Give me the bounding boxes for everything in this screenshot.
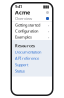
button[interactable]: Support xyxy=(15,62,28,67)
staticText: › xyxy=(48,28,49,34)
button[interactable]: Examples xyxy=(12,34,52,40)
staticText: Getting started xyxy=(15,22,40,28)
staticText: 9:41 xyxy=(15,4,22,9)
staticText: Overview xyxy=(15,16,32,21)
staticText: ▮▮▮ xyxy=(43,4,49,9)
staticText: Support xyxy=(15,62,28,67)
staticText: Status xyxy=(15,68,25,73)
staticText: Configuration xyxy=(15,28,38,34)
staticText: Acme xyxy=(15,9,30,16)
staticText: › xyxy=(48,34,49,40)
button[interactable]: Documentation xyxy=(15,49,41,55)
button[interactable]: Configuration xyxy=(12,28,52,34)
button[interactable]: Add xyxy=(46,17,49,20)
staticText: Documentation xyxy=(15,49,41,55)
staticText: API reference xyxy=(15,56,39,61)
staticText: › xyxy=(48,22,49,28)
button[interactable]: Getting started xyxy=(12,22,52,28)
button[interactable]: Account xyxy=(46,11,49,14)
staticText: Examples xyxy=(15,34,32,40)
button[interactable]: API reference xyxy=(15,56,39,61)
button[interactable]: Status xyxy=(15,68,25,73)
staticText: Resources xyxy=(15,43,35,48)
